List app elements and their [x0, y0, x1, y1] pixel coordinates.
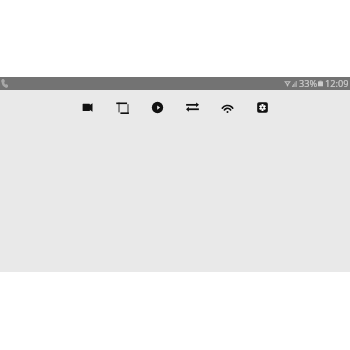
- button[interactable]: Settings: [245, 90, 280, 122]
- button[interactable]: Transfer: [175, 90, 210, 122]
- staticText: 33%: [299, 77, 318, 90]
- button[interactable]: Play: [140, 90, 175, 122]
- button[interactable]: Crop: [105, 90, 140, 122]
- button[interactable]: Record video: [70, 90, 105, 122]
- staticText: 12:09: [325, 77, 349, 90]
- other: Call in progress: [0, 77, 10, 90]
- button[interactable]: Wi-Fi: [210, 90, 245, 122]
